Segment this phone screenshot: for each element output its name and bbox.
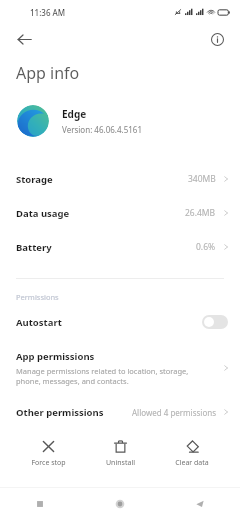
button[interactable]: Autostart bbox=[0, 306, 240, 338]
button[interactable]: App permissions bbox=[0, 344, 240, 392]
staticText: Other permissions bbox=[16, 406, 104, 419]
staticText: Manage permissions related to location, … bbox=[16, 366, 214, 386]
button[interactable]: Uninstall bbox=[94, 436, 146, 471]
button[interactable]: Other permissions bbox=[0, 396, 240, 428]
staticText: 0.6% bbox=[196, 241, 216, 253]
staticText: Version: 46.06.4.5161 bbox=[62, 124, 142, 135]
staticText: Permissions bbox=[16, 292, 59, 302]
staticText: App permissions bbox=[16, 350, 95, 363]
button[interactable]: Force stop bbox=[22, 436, 74, 471]
staticText: Battery bbox=[16, 241, 52, 254]
staticText: Force stop bbox=[31, 458, 66, 468]
staticText: Uninstall bbox=[106, 458, 135, 468]
staticText: Allowed 4 permissions bbox=[132, 407, 216, 418]
button[interactable]: Storage bbox=[0, 162, 240, 196]
button[interactable]: Home bbox=[80, 488, 160, 520]
staticText: Storage bbox=[16, 173, 53, 186]
staticText: Edge bbox=[62, 107, 87, 121]
staticText: 11:36 AM bbox=[30, 7, 66, 18]
staticText: App info bbox=[16, 62, 80, 84]
staticText: Clear data bbox=[175, 458, 209, 468]
staticText: 340MB bbox=[188, 173, 216, 185]
button[interactable]: Battery bbox=[0, 230, 240, 264]
button[interactable]: Back bbox=[10, 25, 38, 53]
staticText: 26.4MB bbox=[185, 207, 216, 219]
button[interactable]: Back bbox=[160, 488, 240, 520]
button[interactable]: Recents bbox=[0, 488, 80, 520]
button[interactable]: Clear data bbox=[166, 436, 218, 471]
staticText: Autostart bbox=[16, 316, 62, 329]
staticText: Data usage bbox=[16, 207, 70, 220]
button[interactable]: App details info bbox=[204, 26, 230, 52]
button[interactable]: Data usage bbox=[0, 196, 240, 230]
